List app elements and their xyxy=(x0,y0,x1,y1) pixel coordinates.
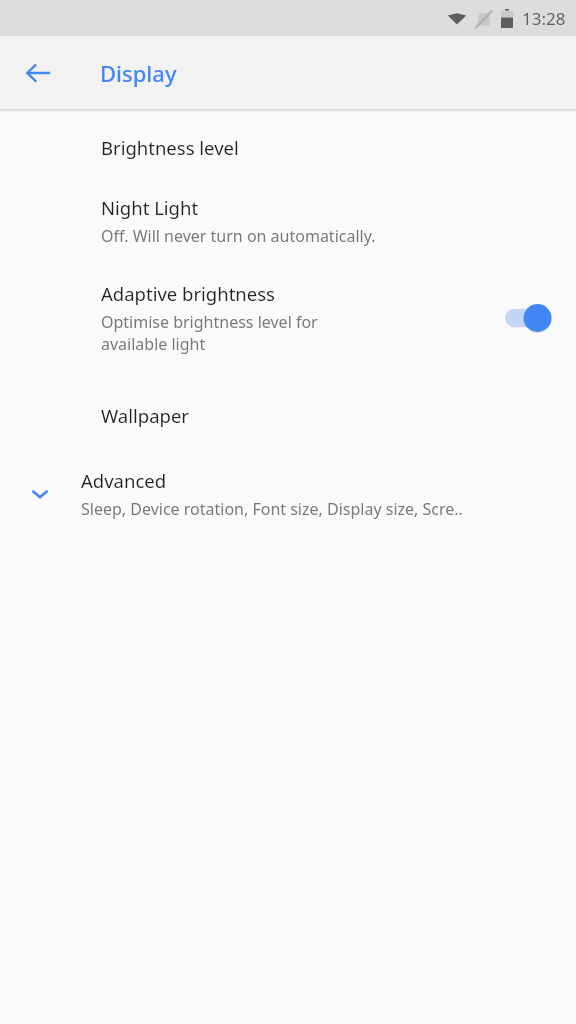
staticText: Off. Will never turn on automatically. xyxy=(101,225,376,247)
button[interactable]: Adaptive brightness toggle xyxy=(504,301,556,335)
staticText: Brightness level xyxy=(101,135,239,160)
staticText: Wallpaper xyxy=(101,403,189,428)
staticText: Display xyxy=(100,58,177,88)
button[interactable]: Night Light xyxy=(0,195,576,247)
button[interactable]: Brightness level xyxy=(0,135,576,160)
staticText: Sleep, Device rotation, Font size, Displ… xyxy=(81,498,463,520)
staticText: Optimise brightness level for available … xyxy=(101,311,318,355)
staticText: Advanced xyxy=(81,468,167,493)
staticText: Night Light xyxy=(101,195,199,220)
button[interactable]: Advanced xyxy=(0,468,576,520)
button[interactable]: Back xyxy=(12,47,64,99)
staticText: 13:28 xyxy=(522,7,566,30)
staticText: Adaptive brightness xyxy=(101,281,275,306)
button[interactable]: Adaptive brightness xyxy=(0,281,576,355)
button[interactable]: Wallpaper xyxy=(0,403,576,428)
